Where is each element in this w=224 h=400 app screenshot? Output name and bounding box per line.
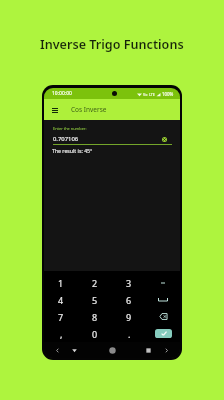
staticText: 6 bbox=[126, 294, 132, 306]
button[interactable]: tab bbox=[146, 291, 180, 308]
staticText: 3 bbox=[126, 277, 132, 289]
button[interactable]: Menu bbox=[48, 103, 62, 117]
staticText: 5 bbox=[92, 294, 98, 306]
staticText: 8 bbox=[92, 311, 98, 323]
button[interactable]: Forward bbox=[160, 344, 172, 356]
staticText: 9 bbox=[126, 311, 132, 323]
button[interactable]: 6 bbox=[112, 291, 146, 308]
staticText: Inverse Trigo Functions bbox=[40, 36, 184, 53]
button[interactable]: minus bbox=[146, 274, 180, 291]
staticText: 2 bbox=[92, 277, 98, 289]
button[interactable]: Clear text bbox=[162, 137, 167, 142]
staticText: 10:00:00 bbox=[52, 90, 72, 97]
button[interactable]: 9 bbox=[112, 308, 146, 325]
staticText: LTE bbox=[149, 92, 155, 97]
staticText: , bbox=[60, 328, 63, 340]
staticText: 100% bbox=[162, 91, 174, 97]
button[interactable]: 0 bbox=[78, 325, 112, 342]
button[interactable]: 8 bbox=[78, 308, 112, 325]
staticText: . bbox=[128, 328, 131, 340]
staticText: The result is: 45° bbox=[52, 147, 93, 154]
staticText: Vo bbox=[143, 92, 148, 97]
button[interactable]: Home bbox=[106, 344, 118, 356]
button[interactable]: 7 bbox=[44, 308, 78, 325]
staticText: Enter the number: bbox=[53, 126, 87, 131]
button[interactable]: del bbox=[146, 308, 180, 325]
button[interactable]: , bbox=[44, 325, 78, 342]
button[interactable]: 2 bbox=[78, 274, 112, 291]
button[interactable]: 4 bbox=[44, 291, 78, 308]
button[interactable]: ok bbox=[146, 325, 180, 342]
staticText: 0.707106 bbox=[53, 135, 79, 143]
staticText: 0 bbox=[92, 328, 98, 340]
staticText: 7 bbox=[58, 311, 64, 323]
button[interactable]: 5 bbox=[78, 291, 112, 308]
staticText: 1 bbox=[58, 277, 64, 289]
button[interactable]: Recents bbox=[142, 344, 154, 356]
staticText: Cos Inverse bbox=[71, 105, 107, 114]
button[interactable]: Back bbox=[51, 344, 63, 356]
staticText: 4 bbox=[58, 294, 64, 306]
button[interactable]: Hide keyboard bbox=[68, 344, 80, 356]
button[interactable]: . bbox=[112, 325, 146, 342]
button[interactable]: 1 bbox=[44, 274, 78, 291]
button[interactable]: 3 bbox=[112, 274, 146, 291]
